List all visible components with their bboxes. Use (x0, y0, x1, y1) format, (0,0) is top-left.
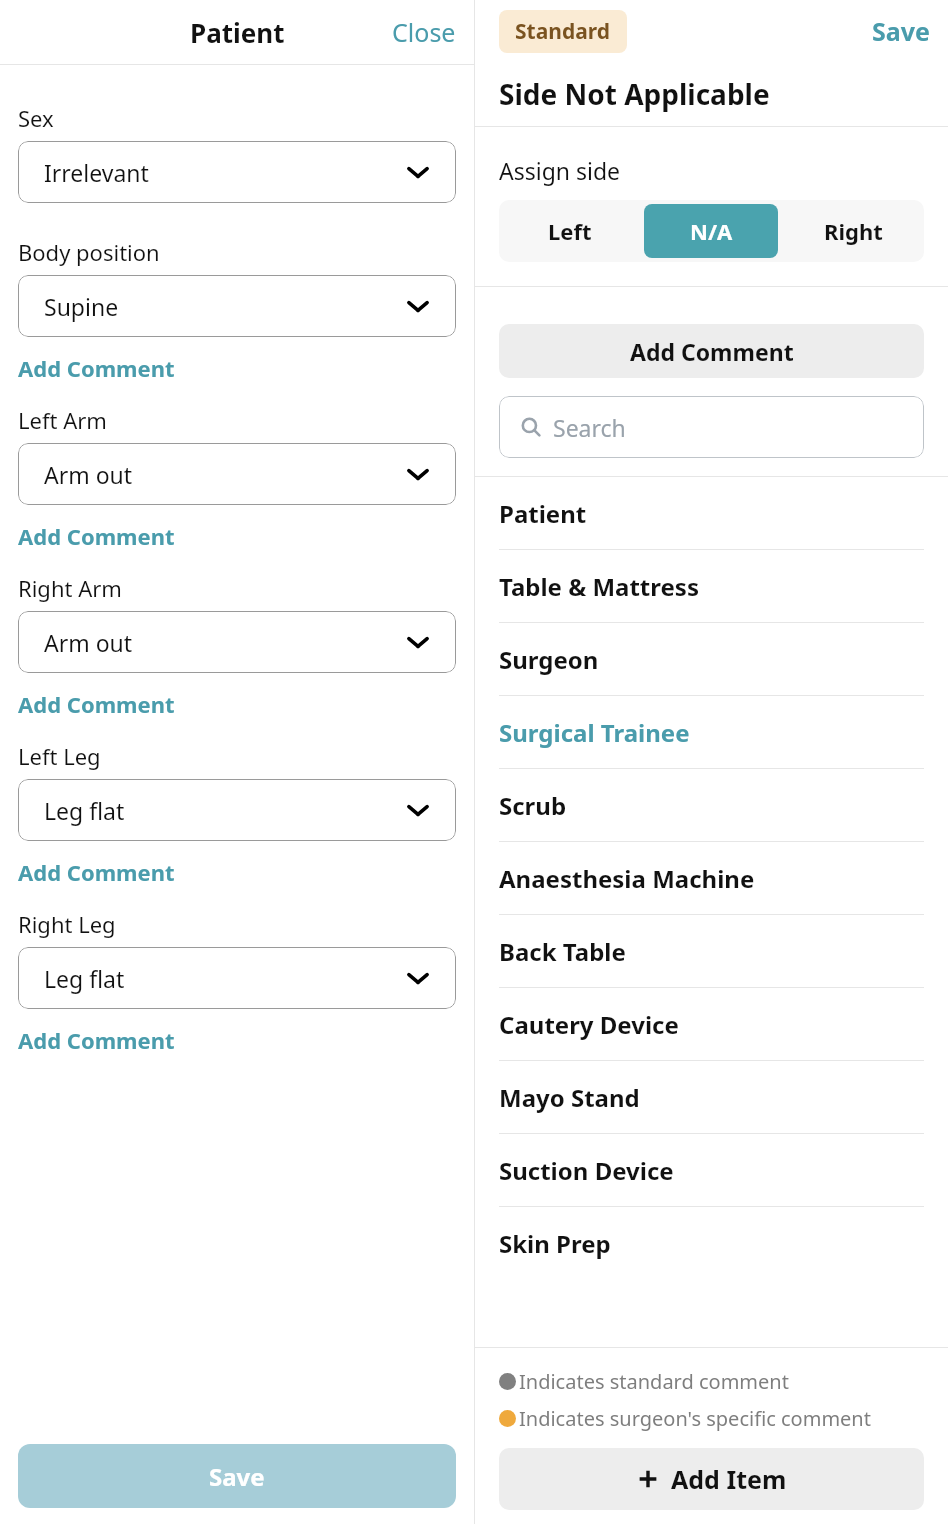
button[interactable]: Save (854, 6, 948, 56)
staticText: Supine (44, 291, 119, 322)
button[interactable]: Leg flat (18, 947, 456, 1009)
staticText: Add Comment (18, 353, 175, 383)
staticText: Leg flat (44, 963, 125, 994)
staticText: N/A (690, 216, 733, 246)
staticText: Leg flat (44, 795, 125, 826)
staticText: Irrelevant (44, 157, 149, 188)
button[interactable]: Save (18, 1444, 456, 1508)
staticText: Side Not Applicable (499, 75, 770, 113)
staticText: Save (872, 14, 930, 48)
button[interactable]: N/A (644, 204, 778, 258)
button[interactable]: Suction Device (475, 1134, 948, 1207)
button[interactable]: Left (503, 204, 636, 258)
button[interactable]: Arm out (18, 611, 456, 673)
staticText: Mayo Stand (499, 1081, 640, 1114)
staticText: Save (209, 1460, 265, 1493)
staticText: Indicates surgeon's specific comment (519, 1405, 871, 1432)
staticText: Right Leg (18, 909, 116, 939)
staticText: Right (824, 216, 883, 246)
staticText: Cautery Device (499, 1008, 679, 1041)
staticText: Add Comment (18, 521, 175, 551)
button[interactable]: Add Comment (18, 353, 175, 383)
button[interactable]: Add Item (499, 1448, 924, 1510)
staticText: Patient (190, 15, 285, 50)
staticText: Surgeon (499, 643, 599, 676)
staticText: Sex (18, 103, 54, 133)
staticText: Skin Prep (499, 1227, 611, 1260)
staticText: Add Comment (18, 857, 175, 887)
button[interactable]: Right (786, 204, 920, 258)
staticText: Assign side (499, 155, 621, 186)
button[interactable]: Leg flat (18, 779, 456, 841)
staticText: Surgical Trainee (499, 716, 690, 749)
button[interactable]: Standard (499, 10, 627, 53)
staticText: Add Item (671, 1462, 787, 1496)
button[interactable]: Anaesthesia Machine (475, 842, 948, 915)
button[interactable]: Patient (475, 477, 948, 550)
button[interactable]: Add Comment (499, 324, 924, 378)
button[interactable]: Table & Mattress (475, 550, 948, 623)
button[interactable]: Skin Prep (475, 1207, 948, 1279)
button[interactable]: Add Comment (18, 857, 175, 887)
staticText: Add Comment (18, 689, 175, 719)
button[interactable]: Close (374, 7, 474, 57)
button[interactable]: Back Table (475, 915, 948, 988)
staticText: Close (392, 15, 456, 49)
staticText: Table & Mattress (499, 570, 699, 603)
staticText: Anaesthesia Machine (499, 862, 755, 895)
button[interactable]: Add Comment (18, 689, 175, 719)
staticText: Suction Device (499, 1154, 674, 1187)
staticText: Left Leg (18, 741, 101, 771)
staticText: Search (553, 412, 626, 443)
button[interactable]: Arm out (18, 443, 456, 505)
staticText: Indicates standard comment (519, 1368, 789, 1395)
staticText: Add Comment (630, 336, 794, 367)
button[interactable]: Scrub (475, 769, 948, 842)
staticText: Add Comment (18, 1025, 175, 1055)
staticText: Standard (515, 17, 611, 46)
staticText: Left (548, 216, 592, 246)
button[interactable]: Add Comment (18, 521, 175, 551)
button[interactable]: Cautery Device (475, 988, 948, 1061)
button[interactable]: Supine (18, 275, 456, 337)
staticText: Arm out (44, 627, 133, 658)
button[interactable]: Add Comment (18, 1025, 175, 1055)
staticText: Scrub (499, 789, 567, 822)
staticText: Body position (18, 237, 160, 267)
staticText: Arm out (44, 459, 133, 490)
button[interactable]: Irrelevant (18, 141, 456, 203)
button[interactable]: Surgeon (475, 623, 948, 696)
button[interactable]: Surgical Trainee (475, 696, 948, 769)
staticText: Right Arm (18, 573, 122, 603)
button[interactable]: Mayo Stand (475, 1061, 948, 1134)
staticText: Patient (499, 497, 587, 530)
staticText: Left Arm (18, 405, 107, 435)
button[interactable]: Search (499, 396, 924, 458)
staticText: Back Table (499, 935, 626, 968)
